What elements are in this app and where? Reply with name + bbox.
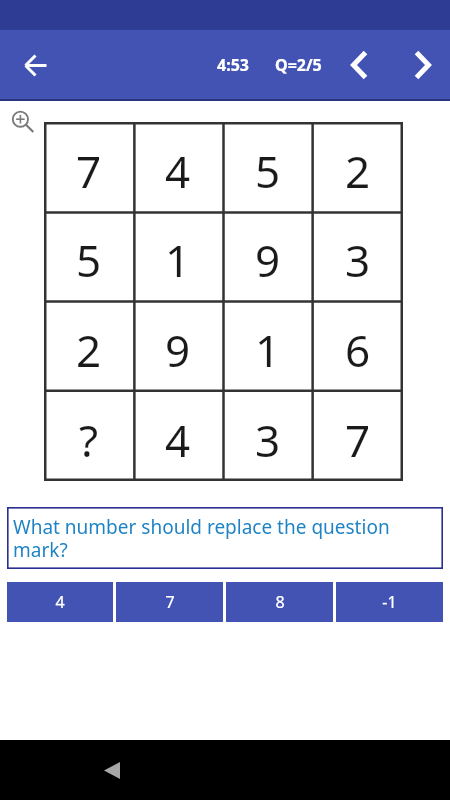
button[interactable]: Navigate back	[94, 752, 130, 788]
staticText: 7	[345, 410, 371, 470]
staticText: 7	[76, 141, 102, 201]
staticText: 4	[165, 141, 191, 201]
button[interactable]: Previous question	[342, 45, 376, 85]
staticText: 3	[255, 410, 281, 470]
button[interactable]: Back	[12, 41, 60, 89]
staticText: 4	[55, 591, 65, 613]
staticText: 5	[255, 141, 281, 201]
button[interactable]: 8	[226, 582, 333, 622]
staticText: 3	[345, 230, 371, 290]
staticText: 4	[165, 410, 191, 470]
staticText: 7	[165, 591, 175, 613]
staticText: What number should replace the question …	[13, 514, 439, 563]
button[interactable]: Zoom in	[9, 108, 39, 138]
staticText: 9	[165, 320, 191, 380]
staticText: 1	[255, 320, 281, 380]
staticText: 1	[165, 230, 191, 290]
staticText: Q=2/5	[275, 54, 322, 76]
staticText: -1	[382, 591, 397, 613]
button[interactable]: Next question	[405, 45, 439, 85]
staticText: 6	[345, 320, 371, 380]
staticText: 8	[275, 591, 285, 613]
staticText: 4:53	[217, 54, 249, 76]
staticText: 2	[76, 320, 102, 380]
button[interactable]: 7	[116, 582, 223, 622]
staticText: 2	[345, 141, 371, 201]
staticText: 5	[76, 230, 102, 290]
button[interactable]: 4	[7, 582, 113, 622]
staticText: 9	[255, 230, 281, 290]
staticText: ?	[79, 410, 99, 470]
button[interactable]: -1	[336, 582, 443, 622]
